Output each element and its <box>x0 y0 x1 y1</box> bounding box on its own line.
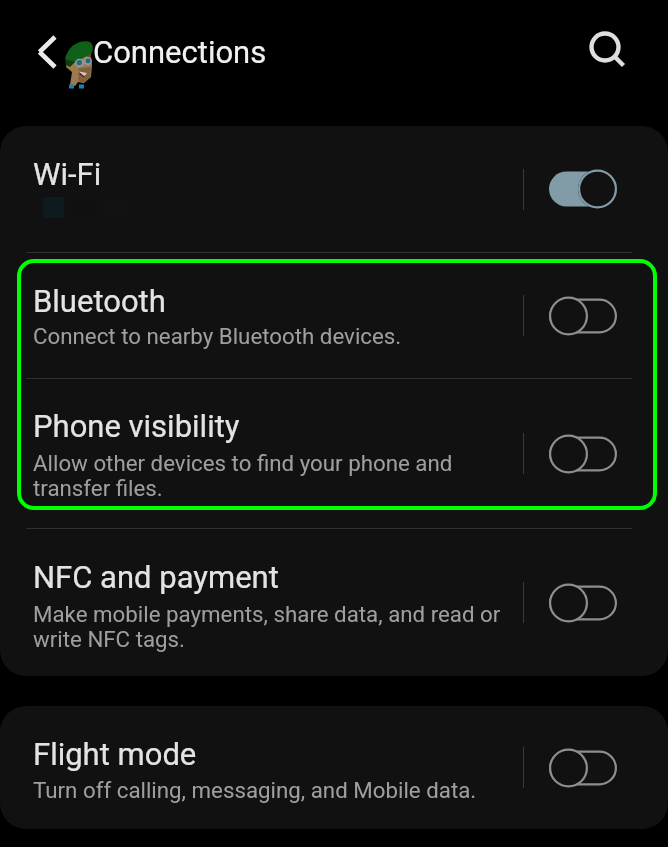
button[interactable]: Bluetooth switch <box>547 295 619 337</box>
button[interactable]: Back <box>22 29 68 75</box>
button[interactable]: Wi-Fi <box>0 126 668 252</box>
button[interactable]: Wi-Fi switch <box>547 168 619 210</box>
staticText: Allow other devices to find your phone a… <box>33 450 453 501</box>
staticText: Connect to nearby Bluetooth devices. <box>33 323 402 349</box>
button[interactable]: Phone visibility switch <box>547 433 619 475</box>
staticText: Wi-Fi <box>33 156 102 192</box>
button[interactable]: Flight mode switch <box>547 747 619 789</box>
button[interactable]: NFC and payment <box>0 529 668 676</box>
staticText: NFC and payment <box>33 559 279 595</box>
button[interactable]: Bluetooth <box>0 253 668 378</box>
staticText: Connections <box>93 34 267 70</box>
button[interactable]: Flight mode <box>0 706 668 829</box>
staticText: Flight mode <box>33 736 197 772</box>
button[interactable]: Phone visibility <box>0 379 668 528</box>
staticText: Turn off calling, messaging, and Mobile … <box>33 777 477 803</box>
staticText: Make mobile payments, share data, and re… <box>33 601 501 652</box>
button[interactable]: Search <box>579 23 631 75</box>
staticText: Phone visibility <box>33 408 240 444</box>
staticText: Bluetooth <box>33 283 166 319</box>
button[interactable]: NFC and payment switch <box>547 582 619 624</box>
